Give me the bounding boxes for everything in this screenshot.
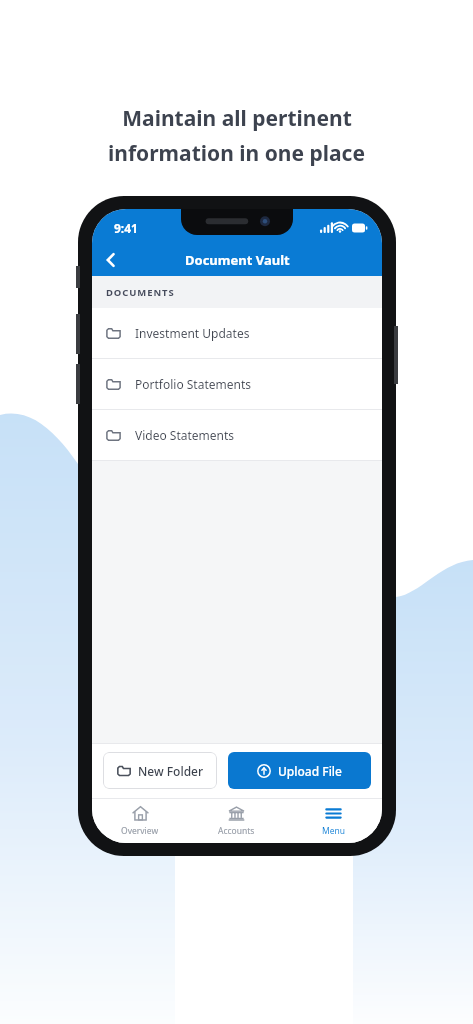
staticText: New Folder [138, 763, 204, 779]
staticText: DOCUMENTS [106, 286, 175, 299]
staticText: Maintain all pertinent [122, 104, 352, 133]
staticText: 9:41 [114, 220, 138, 236]
button[interactable]: New Folder [103, 752, 217, 789]
staticText: Upload File [278, 763, 342, 779]
staticText: Overview [121, 825, 159, 837]
staticText: Portfolio Statements [135, 376, 252, 392]
staticText: Video Statements [135, 427, 235, 443]
staticText: Menu [322, 825, 346, 837]
button[interactable]: Accounts [188, 799, 285, 843]
staticText: information in one place [108, 139, 365, 168]
staticText: Accounts [218, 825, 255, 837]
button[interactable]: Portfolio Statements [92, 359, 382, 410]
staticText: Investment Updates [135, 325, 250, 341]
button[interactable]: Back [92, 243, 130, 276]
button[interactable]: Video Statements [92, 410, 382, 461]
staticText: Document Vault [185, 251, 290, 269]
button[interactable]: Upload File [228, 752, 371, 789]
button[interactable]: Overview [92, 799, 188, 843]
button[interactable]: Investment Updates [92, 308, 382, 359]
button[interactable]: Menu [285, 799, 382, 843]
